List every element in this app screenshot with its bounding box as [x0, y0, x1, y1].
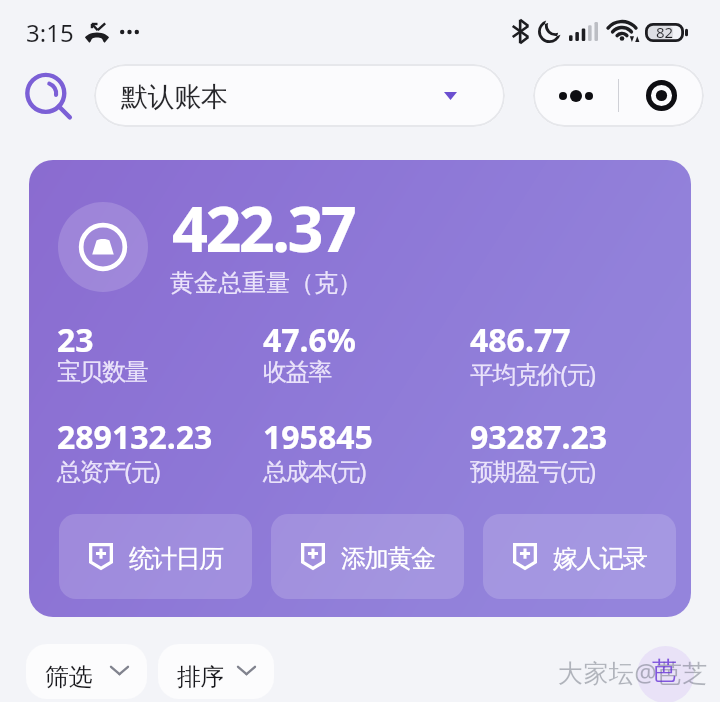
button[interactable]: 筛选 — [26, 644, 147, 699]
staticText: 486.77 — [470, 318, 571, 362]
staticText: 宝贝数量 — [57, 357, 148, 387]
button[interactable]: 统计日历 — [59, 514, 252, 599]
staticText: 添加黄金 — [341, 543, 435, 574]
staticText: 195845 — [263, 415, 373, 459]
staticText: 芭 — [652, 655, 677, 686]
button[interactable]: 排序 — [158, 644, 274, 699]
button[interactable]: 添加黄金 — [271, 514, 464, 599]
button[interactable]: 默认账本 — [94, 64, 505, 127]
staticText: 收益率 — [263, 357, 331, 387]
button[interactable]: Record — [619, 64, 704, 127]
staticText: 289132.23 — [57, 415, 213, 459]
staticText: 47.6% — [263, 318, 356, 362]
staticText: 平均克价(元) — [470, 357, 595, 390]
staticText: 422.37 — [172, 185, 355, 271]
staticText: 预期盈亏(元) — [470, 454, 595, 487]
button[interactable]: 422.37 — [29, 160, 691, 617]
staticText: 默认账本 — [121, 80, 228, 114]
button[interactable]: More options — [533, 64, 618, 127]
staticText: 93287.23 — [470, 415, 608, 459]
staticText: 3:15 — [26, 16, 74, 49]
staticText: 嫁人记录 — [553, 543, 647, 574]
staticText: 大家坛@芭芝 — [558, 655, 708, 689]
staticText: 总资产(元) — [57, 454, 159, 487]
staticText: 统计日历 — [129, 543, 223, 574]
staticText: 黄金总重量（克） — [170, 268, 362, 298]
staticText: 23 — [57, 318, 94, 362]
button[interactable]: Search — [19, 67, 76, 124]
staticText: 筛选 — [45, 662, 92, 692]
staticText: 总成本(元) — [263, 454, 365, 487]
button[interactable]: 嫁人记录 — [483, 514, 676, 599]
staticText: 排序 — [177, 662, 224, 692]
staticText: 82 — [656, 22, 674, 42]
